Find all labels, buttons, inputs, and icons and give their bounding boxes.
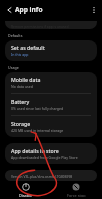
button[interactable]: Battery	[5, 94, 97, 115]
button[interactable]: Navigate up	[2, 4, 14, 16]
staticText: Defaults	[8, 33, 23, 38]
staticText: In this app	[11, 52, 29, 57]
staticText: App info	[15, 5, 43, 14]
staticText: Version V3L.plus/d.ns.osmful.7G806998	[11, 174, 73, 178]
button[interactable]: More options	[88, 4, 100, 16]
staticText: Remove permissions if app is unused	[11, 24, 69, 28]
staticText: App details in store	[11, 147, 59, 154]
button[interactable]: Version V3L.plus/d.ns.osmful.7G806998	[5, 170, 97, 181]
button[interactable]: Set as default	[5, 40, 97, 61]
button[interactable]: App details in store	[5, 143, 97, 164]
staticText: 0% used since last fully charged	[11, 106, 64, 111]
button[interactable]: Remove permissions if app is unused	[5, 21, 97, 29]
staticText: No data used	[11, 84, 33, 89]
staticText: Mobile data	[11, 76, 41, 83]
staticText: Force stop	[67, 193, 86, 197]
staticText: Set as default	[11, 44, 45, 51]
button[interactable]: Storage	[5, 116, 97, 137]
staticText: Storage	[11, 120, 31, 127]
button[interactable]: Mobile data	[5, 72, 97, 93]
staticText: App downloaded from Google Play Store	[11, 155, 78, 160]
staticText: Usage	[8, 65, 19, 70]
staticText: Battery	[11, 98, 30, 105]
staticText: Disable	[19, 193, 33, 197]
button[interactable]: Disable	[3, 181, 49, 199]
staticText: 420 MB used in internal storage	[11, 128, 64, 133]
button[interactable]: Force stop	[53, 181, 99, 199]
